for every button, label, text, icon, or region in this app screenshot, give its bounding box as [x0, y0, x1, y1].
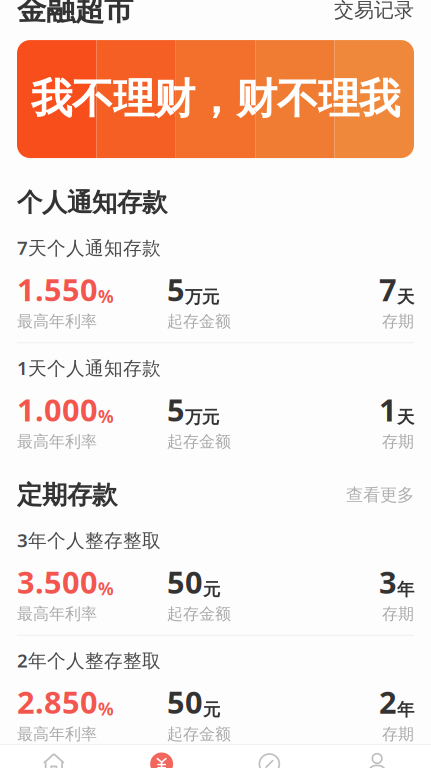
- staticText: 交易记录: [334, 0, 414, 22]
- staticText: 3年个人整存整取: [17, 528, 161, 552]
- button[interactable]: 7天个人通知存款: [0, 223, 431, 343]
- staticText: %: [98, 577, 114, 600]
- staticText: 7: [379, 269, 397, 310]
- staticText: 最高年利率: [17, 604, 97, 624]
- button[interactable]: 我的: [323, 745, 431, 768]
- staticText: 5: [167, 269, 185, 310]
- staticText: 起存金额: [167, 312, 231, 331]
- staticText: 存期: [382, 604, 414, 624]
- staticText: 起存金额: [167, 432, 231, 452]
- staticText: 最高年利率: [17, 432, 97, 452]
- staticText: 存期: [382, 312, 414, 331]
- button[interactable]: 3年个人整存整取: [0, 516, 431, 636]
- staticText: 1天个人通知存款: [17, 355, 161, 380]
- staticText: 5: [167, 389, 185, 430]
- staticText: 元: [203, 579, 220, 600]
- staticText: 万元: [185, 407, 219, 428]
- staticText: 起存金额: [167, 604, 231, 624]
- button[interactable]: 发现: [215, 745, 323, 768]
- staticText: 7天个人通知存款: [17, 235, 161, 260]
- staticText: %: [98, 697, 114, 720]
- button[interactable]: 交易记录: [334, 0, 414, 22]
- staticText: 1: [379, 389, 397, 430]
- staticText: 查看更多: [346, 484, 414, 506]
- staticText: 元: [203, 699, 220, 720]
- staticText: 最高年利率: [17, 724, 97, 744]
- staticText: 天: [397, 286, 414, 308]
- button[interactable]: 查看更多: [346, 484, 414, 506]
- staticText: 2年个人整存整取: [17, 648, 161, 673]
- button[interactable]: 1天个人通知存款: [0, 343, 431, 451]
- staticText: 3.500: [17, 561, 98, 602]
- staticText: 50: [167, 682, 203, 722]
- staticText: 1.000: [17, 389, 98, 430]
- staticText: 存期: [382, 432, 414, 452]
- staticText: 3: [379, 561, 397, 602]
- button[interactable]: 金融超市: [108, 745, 216, 768]
- staticText: 2.850: [17, 682, 98, 722]
- staticText: %: [98, 405, 114, 428]
- staticText: 存期: [382, 724, 414, 744]
- staticText: 万元: [185, 286, 219, 308]
- staticText: 2: [379, 682, 397, 722]
- staticText: 年: [397, 579, 414, 600]
- staticText: 起存金额: [167, 724, 231, 744]
- staticText: 1.550: [17, 269, 98, 310]
- staticText: 个人通知存款: [17, 187, 167, 218]
- staticText: 我不理财，财不理我: [31, 74, 400, 124]
- button[interactable]: 2年个人整存整取: [0, 636, 431, 744]
- button[interactable]: 我不理财，财不理我: [0, 40, 431, 158]
- button[interactable]: 首页: [0, 745, 108, 768]
- staticText: 最高年利率: [17, 312, 97, 331]
- staticText: 金融超市: [17, 0, 133, 28]
- staticText: 50: [167, 561, 203, 602]
- staticText: 年: [397, 699, 414, 720]
- staticText: %: [98, 285, 114, 308]
- staticText: 定期存款: [17, 479, 117, 511]
- staticText: 天: [397, 407, 414, 428]
